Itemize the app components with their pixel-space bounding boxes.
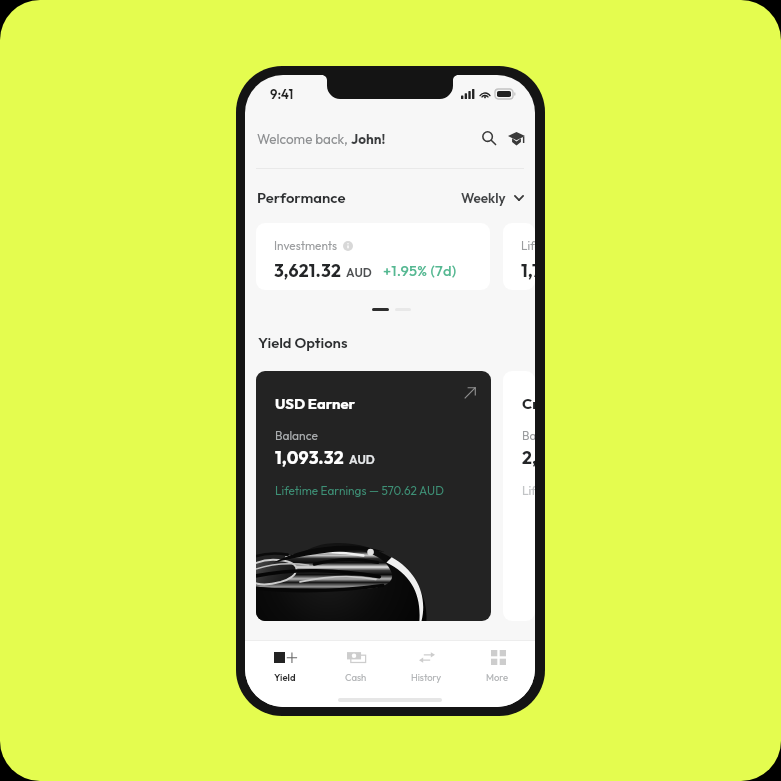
button[interactable]: More (462, 650, 533, 683)
staticText: Weekly (461, 189, 506, 206)
staticText: 1,093.32 (275, 446, 344, 468)
button[interactable]: Open USD Earner (464, 387, 476, 399)
staticText: AUD (349, 452, 375, 467)
button[interactable]: Welcome back, (257, 130, 386, 147)
staticText: AUD (346, 265, 372, 280)
staticText: History (411, 671, 442, 683)
staticText: Yield (274, 671, 296, 683)
button[interactable]: Investments (256, 223, 490, 290)
staticText: 2,480.11 (522, 446, 535, 468)
staticText: Performance (257, 188, 346, 207)
staticText: Lifetime Earnings — 210.50 AUD (522, 483, 535, 498)
staticText: USD Earner (275, 394, 356, 413)
staticText: More (486, 671, 509, 683)
staticText: Balance (275, 428, 318, 443)
staticText: Balance (522, 428, 535, 443)
staticText: 9:41 (270, 86, 294, 102)
button[interactable]: Lifetime (503, 223, 535, 290)
button[interactable]: Crypto Earner (503, 371, 535, 621)
button[interactable]: Learn (504, 126, 528, 150)
button[interactable]: Cash (320, 650, 391, 683)
staticText: +1.95% (7d) (383, 261, 457, 280)
staticText: Crypto Earner (522, 394, 535, 413)
staticText: Lifetime (521, 238, 535, 253)
staticText: 1,742.88 (521, 259, 535, 281)
button[interactable]: Search (477, 126, 501, 150)
staticText: John! (351, 130, 386, 147)
staticText: Cash (345, 671, 367, 683)
button[interactable]: Weekly (461, 189, 524, 206)
staticText: Lifetime Earnings — 570.62 AUD (275, 483, 444, 498)
button[interactable]: History (391, 650, 462, 683)
button[interactable]: Yield (249, 650, 320, 683)
staticText: 3,621.32 (274, 259, 342, 281)
staticText: Yield Options (258, 333, 348, 352)
button[interactable]: USD Earner (256, 371, 491, 621)
staticText: Investments (274, 238, 338, 253)
staticText: Welcome back, (257, 130, 351, 147)
